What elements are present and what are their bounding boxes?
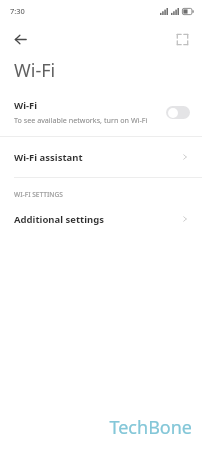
staticText: Wi-Fi assistant (14, 151, 181, 164)
staticText: Additional settings (14, 213, 181, 226)
button[interactable]: Scan QR code (168, 25, 196, 53)
button[interactable]: Additional settings (0, 208, 202, 230)
button[interactable]: Wi-Fi assistant (0, 137, 202, 177)
staticText: TechBone (0, 415, 192, 440)
staticText: 7:30 (10, 6, 25, 16)
staticText: Wi-Fi (14, 58, 56, 83)
staticText: To see available networks, turn on Wi-Fi (14, 115, 148, 125)
button[interactable]: Wi-Fi toggle (166, 106, 190, 119)
staticText: WI-FI SETTINGS (14, 190, 63, 199)
button[interactable]: Back (6, 25, 34, 53)
staticText: Wi-Fi (14, 99, 38, 112)
button[interactable]: Wi-Fi (0, 97, 202, 131)
